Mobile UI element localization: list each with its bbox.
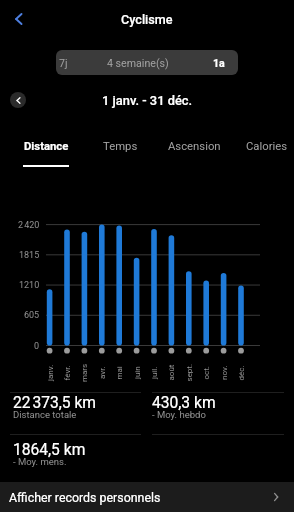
staticText: 1815	[19, 250, 40, 261]
button[interactable]: 7j	[56, 50, 70, 75]
staticText: 22 373,5 km	[13, 394, 97, 412]
staticText: avr.	[98, 366, 107, 379]
button[interactable]: 4 semaine(s)	[70, 50, 206, 75]
staticText: 430,3 km	[152, 394, 216, 412]
button[interactable]: Temps	[83, 133, 157, 167]
staticText: - Moy. hebdo	[152, 409, 206, 420]
staticText: 7j	[59, 57, 68, 69]
button[interactable]: Previous period	[10, 92, 26, 108]
staticText: Afficher records personnels	[9, 490, 161, 505]
button[interactable]: Distance	[9, 133, 83, 167]
staticText: 0	[34, 341, 40, 352]
button[interactable]: Ascension	[157, 133, 231, 167]
staticText: déc.	[236, 364, 245, 380]
staticText: Distance totale	[13, 409, 77, 420]
staticText: juin	[133, 366, 142, 379]
staticText: 1 janv. - 31 déc.	[102, 93, 193, 108]
staticText: juil.	[150, 366, 159, 379]
staticText: Cyclisme	[121, 12, 173, 27]
staticText: mai	[114, 365, 123, 379]
staticText: 2 420	[18, 220, 40, 231]
staticText: sept.	[184, 363, 193, 381]
staticText: nov.	[220, 365, 229, 380]
staticText: 1864,5 km	[13, 441, 86, 459]
staticText: 4 semaine(s)	[107, 57, 169, 69]
staticText: janv.	[46, 364, 55, 381]
staticText: Ascension	[168, 140, 221, 153]
staticText: mars	[80, 363, 89, 382]
staticText: 1a	[213, 57, 225, 69]
button[interactable]: Afficher records personnels	[0, 482, 294, 512]
staticText: Distance	[24, 140, 69, 153]
staticText: 1210	[19, 280, 40, 291]
button[interactable]: Back	[4, 4, 34, 34]
staticText: août	[166, 364, 175, 380]
staticText: - Moy. mens.	[13, 456, 67, 467]
staticText: Temps	[103, 140, 138, 153]
staticText: Calories	[246, 140, 288, 153]
button[interactable]: 1a	[203, 50, 235, 75]
staticText: févr.	[62, 364, 71, 380]
staticText: oct.	[201, 365, 210, 379]
button[interactable]: Calories	[231, 133, 294, 167]
staticText: 605	[24, 310, 40, 321]
